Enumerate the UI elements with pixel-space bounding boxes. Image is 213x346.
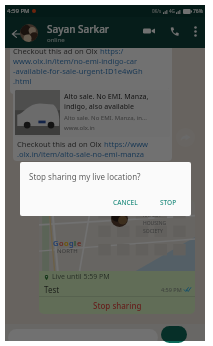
- staticText: https://www: [104, 139, 149, 149]
- staticText: 4G: [169, 8, 175, 14]
- staticText: o: [64, 238, 69, 248]
- staticText: 76%: [193, 8, 203, 15]
- staticText: o: [59, 238, 64, 248]
- staticText: CANCEL: [113, 198, 138, 207]
- button[interactable]: Back: [8, 25, 26, 43]
- staticText: Test: [44, 284, 60, 295]
- staticText: Stop sharing my live location?: [29, 171, 141, 182]
- button[interactable]: Video call: [140, 22, 158, 40]
- staticText: RRPLOT: [143, 212, 162, 219]
- staticText: NORTH: [57, 247, 78, 255]
- button[interactable]: SECTOR H: [39, 200, 195, 314]
- staticText: 0K/s: [152, 8, 162, 14]
- staticText: HOUSING: [143, 220, 167, 227]
- staticText: .olx.in/item/alto-sale-no-emi-manza: [17, 149, 145, 159]
- staticText: Stop sharing: [93, 300, 142, 311]
- staticText: https:/: [100, 46, 124, 56]
- staticText: l: [74, 238, 77, 248]
- staticText: SECTOR H: [143, 204, 167, 211]
- button[interactable]: Call: [165, 22, 183, 40]
- staticText: Live until 5:59 PM: [52, 272, 110, 282]
- staticText: G: [53, 238, 59, 248]
- staticText: indigo, also available: [64, 102, 134, 112]
- button[interactable]: Stop sharing: [39, 297, 195, 314]
- staticText: STOP: [160, 198, 177, 207]
- staticText: e: [77, 238, 82, 248]
- staticText: Checkout this ad on Olx: [17, 139, 104, 149]
- button[interactable]: Alto sale. No EMI. Manza,: [13, 88, 172, 161]
- button[interactable]: [8, 329, 158, 346]
- staticText: 4:59 PM: [161, 286, 182, 293]
- staticText: Sayan Sarkar: [47, 22, 110, 36]
- staticText: g: [69, 238, 74, 248]
- staticText: -available-for-sale-urgent-ID1e4wGh: [13, 66, 143, 76]
- button[interactable]: Send voice message: [161, 326, 187, 343]
- staticText: Checkout this ad on Olx: [13, 46, 100, 56]
- staticText: Alto sale. No EMI. Manza, in...: [64, 114, 147, 122]
- button[interactable]: Profile photo: [20, 24, 38, 42]
- staticText: www.olx.in: [64, 124, 95, 132]
- staticText: .html: [13, 76, 32, 86]
- button[interactable]: Checkout this ad on Olx: [10, 43, 172, 94]
- staticText: Alto sale. No EMI. Manza,: [64, 92, 149, 102]
- button[interactable]: STOP: [154, 194, 183, 211]
- staticText: 4:59 PM: [7, 7, 30, 15]
- button[interactable]: CANCEL: [107, 194, 144, 211]
- staticText: www.olx.in/item/no-emi-indigo-car: [13, 56, 138, 66]
- staticText: online: [47, 36, 65, 44]
- button[interactable]: Sayan Sarkar: [47, 17, 132, 48]
- staticText: SOCIETY: [143, 228, 163, 235]
- button[interactable]: More options: [186, 22, 204, 40]
